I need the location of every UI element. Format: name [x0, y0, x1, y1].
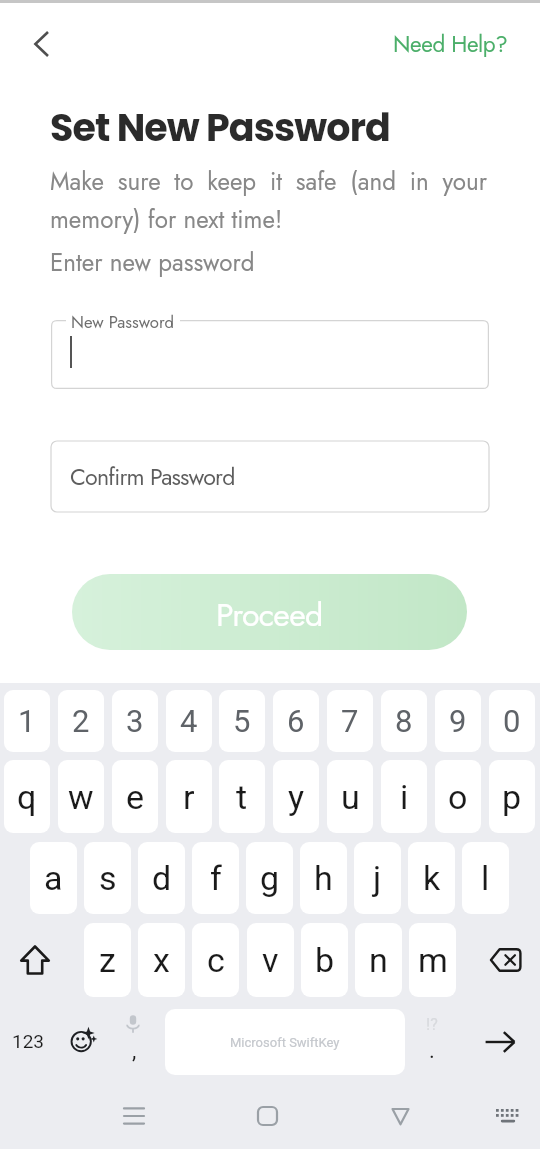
staticText: t	[236, 777, 248, 817]
staticText: s	[99, 858, 117, 898]
staticText: z	[99, 940, 116, 980]
staticText: 2	[72, 703, 90, 739]
staticText: b	[315, 940, 335, 980]
staticText: 9	[449, 703, 467, 739]
button[interactable]: k	[408, 842, 455, 914]
staticText: 4	[180, 703, 198, 739]
staticText: l	[481, 858, 490, 898]
button[interactable]: Back	[376, 1092, 425, 1140]
button[interactable]: t	[219, 760, 265, 833]
button[interactable]: y	[273, 760, 319, 833]
staticText: p	[502, 777, 522, 817]
staticText: w	[68, 777, 94, 817]
button[interactable]: Back	[18, 20, 66, 68]
button[interactable]: Change keyboard	[483, 1092, 532, 1140]
button[interactable]: i	[381, 760, 427, 833]
staticText: y	[288, 777, 305, 817]
staticText: k	[423, 858, 441, 898]
staticText: h	[314, 858, 333, 898]
staticText: 0	[503, 703, 521, 739]
staticText: a	[44, 858, 63, 898]
button[interactable]: 0	[489, 690, 535, 752]
staticText: 5	[233, 703, 251, 739]
staticText: 6	[287, 703, 305, 739]
staticText: o	[448, 777, 468, 817]
button[interactable]: o	[435, 760, 481, 833]
button[interactable]: 5	[219, 690, 265, 752]
button[interactable]	[51, 320, 489, 389]
staticText: q	[17, 777, 37, 817]
button[interactable]: Enter	[464, 1009, 536, 1075]
staticText: c	[207, 940, 225, 980]
button[interactable]: c	[192, 923, 239, 997]
button[interactable]: r	[166, 760, 212, 833]
button[interactable]: m	[409, 923, 456, 997]
button[interactable]: u	[327, 760, 373, 833]
staticText: e	[126, 777, 145, 817]
button[interactable]: Need Help?	[383, 22, 518, 67]
button[interactable]: 6	[273, 690, 319, 752]
staticText: v	[262, 940, 279, 980]
button[interactable]: Recent apps	[109, 1092, 158, 1140]
button[interactable]: e	[112, 760, 158, 833]
button[interactable]: 9	[435, 690, 481, 752]
button[interactable]: l	[462, 842, 509, 914]
button[interactable]: f	[192, 842, 239, 914]
staticText: Confirm Password	[70, 460, 235, 494]
button[interactable]: z	[84, 923, 131, 997]
button[interactable]: Microsoft SwiftKey	[165, 1009, 405, 1075]
button[interactable]: g	[246, 842, 293, 914]
button[interactable]: Backspace	[468, 923, 540, 997]
button[interactable]: 3	[112, 690, 158, 752]
staticText: Set New Password	[50, 101, 390, 154]
staticText: g	[260, 858, 280, 898]
button[interactable]: s	[84, 842, 131, 914]
staticText: 1	[18, 703, 36, 739]
button[interactable]: 1	[4, 690, 50, 752]
staticText: f	[210, 858, 222, 898]
staticText: m	[418, 940, 448, 980]
staticText: New Password	[71, 310, 175, 334]
button[interactable]: 2	[58, 690, 104, 752]
button[interactable]: n	[355, 923, 402, 997]
staticText: .	[429, 1038, 435, 1064]
staticText: Make sure to keep it safe (and in your m…	[50, 164, 487, 237]
staticText: 123	[12, 1030, 45, 1052]
staticText: n	[369, 940, 388, 980]
button[interactable]: Voice input	[114, 1010, 152, 1038]
staticText: i	[400, 777, 409, 817]
staticText: !?	[426, 1015, 438, 1034]
button[interactable]: Confirm Password	[51, 441, 489, 512]
button[interactable]: j	[354, 842, 401, 914]
button[interactable]: b	[301, 923, 348, 997]
button[interactable]: x	[138, 923, 185, 997]
staticText: Enter new password	[50, 245, 255, 280]
staticText: 3	[126, 703, 144, 739]
button[interactable]: 123	[2, 1007, 54, 1075]
button[interactable]: 4	[166, 690, 212, 752]
button[interactable]: .	[408, 1041, 456, 1075]
button[interactable]: Home	[243, 1092, 292, 1140]
staticText: u	[341, 777, 360, 817]
button[interactable]: v	[247, 923, 294, 997]
button[interactable]: 8	[381, 690, 427, 752]
staticText: x	[153, 940, 170, 980]
button[interactable]: 7	[327, 690, 373, 752]
button[interactable]: !?	[408, 1010, 456, 1038]
button[interactable]: Emoji and stickers	[58, 1009, 104, 1075]
button[interactable]: ,	[114, 1041, 152, 1075]
button[interactable]: h	[300, 842, 347, 914]
staticText: Need Help?	[393, 28, 508, 61]
staticText: 8	[395, 703, 413, 739]
button[interactable]: a	[30, 842, 77, 914]
staticText: 7	[341, 703, 359, 739]
button[interactable]: q	[4, 760, 50, 833]
staticText: Proceed	[216, 592, 323, 638]
button[interactable]: d	[138, 842, 185, 914]
button[interactable]: Shift	[4, 923, 66, 997]
staticText: ,	[132, 1038, 137, 1064]
button[interactable]: Proceed	[72, 574, 467, 650]
button[interactable]: w	[58, 760, 104, 833]
button[interactable]: p	[489, 760, 535, 833]
staticText: r	[183, 777, 195, 817]
